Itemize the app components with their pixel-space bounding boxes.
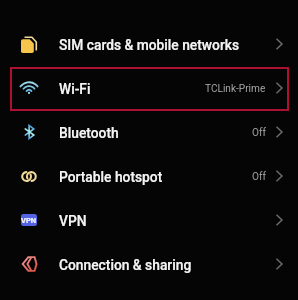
button[interactable]: Connection & sharing <box>0 242 298 286</box>
staticText: Wi-Fi <box>59 81 91 97</box>
button[interactable]: SIM cards & mobile networks <box>0 22 298 66</box>
button[interactable]: Portable hotspot <box>0 154 298 198</box>
staticText: Bluetooth <box>59 125 119 141</box>
button[interactable]: Wi-Fi <box>0 66 298 110</box>
staticText: SIM cards & mobile networks <box>59 37 240 53</box>
staticText: Connection & sharing <box>59 257 192 273</box>
staticText: TCLink-Prime <box>205 83 266 95</box>
button[interactable]: Bluetooth <box>0 110 298 154</box>
button[interactable]: VPN <box>0 198 298 242</box>
staticText: Off <box>252 127 266 139</box>
staticText: Off <box>252 171 266 183</box>
staticText: VPN <box>21 216 37 225</box>
staticText: VPN <box>59 213 87 229</box>
staticText: Portable hotspot <box>59 169 163 185</box>
